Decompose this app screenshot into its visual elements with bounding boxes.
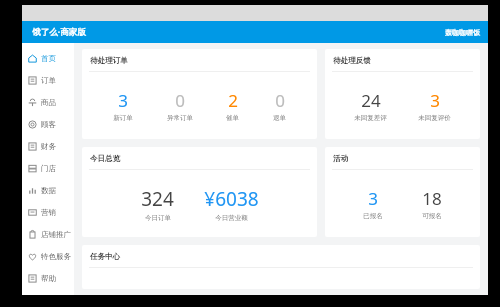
- staticText: 饿了么·商家版: [32, 26, 86, 38]
- staticText: 24: [361, 89, 381, 112]
- staticText: 2: [228, 89, 238, 112]
- staticText: 3: [368, 187, 378, 210]
- staticText: 门店: [41, 164, 56, 173]
- button[interactable]: 轰咖咖喱饭: [437, 25, 488, 40]
- button[interactable]: 顾客: [22, 113, 74, 135]
- button[interactable]: 数据: [22, 179, 74, 201]
- staticText: 店铺推广: [41, 230, 71, 239]
- staticText: 特色服务: [41, 252, 71, 261]
- staticText: 新订单: [113, 114, 133, 122]
- button[interactable]: 3: [361, 187, 385, 220]
- button[interactable]: 3: [416, 89, 453, 122]
- button[interactable]: 特色服务: [22, 245, 74, 267]
- button[interactable]: 24: [352, 89, 389, 122]
- staticText: 未回复差评: [354, 114, 387, 122]
- button[interactable]: 商品: [22, 91, 74, 113]
- staticText: 首页: [41, 54, 56, 63]
- staticText: 待处理订单: [90, 56, 128, 65]
- staticText: 18: [422, 187, 442, 210]
- button[interactable]: 订单: [22, 69, 74, 91]
- button[interactable]: 待处理反馈: [325, 49, 480, 139]
- staticText: 催单: [226, 114, 239, 122]
- staticText: 轰咖咖喱饭: [445, 28, 480, 37]
- staticText: 0: [175, 89, 185, 112]
- staticText: ¥6038: [204, 186, 259, 212]
- staticText: 324: [141, 186, 174, 212]
- button[interactable]: 首页: [22, 47, 74, 69]
- staticText: 异常订单: [167, 114, 193, 122]
- button[interactable]: 营销: [22, 201, 74, 223]
- button[interactable]: 18: [420, 187, 444, 220]
- button[interactable]: 3: [111, 89, 135, 122]
- staticText: 今日营业额: [215, 214, 248, 222]
- staticText: 营销: [41, 208, 56, 217]
- staticText: 今日总览: [90, 154, 120, 163]
- staticText: 数据: [41, 186, 56, 195]
- staticText: 顾客: [41, 120, 56, 129]
- staticText: 订单: [41, 76, 56, 85]
- button[interactable]: 今日总览: [82, 147, 317, 237]
- staticText: 帮助: [41, 274, 56, 283]
- staticText: 已报名: [363, 212, 383, 220]
- staticText: 退单: [273, 114, 286, 122]
- staticText: 今日订单: [145, 214, 171, 222]
- staticText: 待处理反馈: [333, 56, 371, 65]
- button[interactable]: 待处理订单: [82, 49, 317, 139]
- staticText: 商品: [41, 98, 56, 107]
- button[interactable]: 财务: [22, 135, 74, 157]
- button[interactable]: 324: [139, 186, 176, 222]
- staticText: 3: [118, 89, 128, 112]
- button[interactable]: 门店: [22, 157, 74, 179]
- button[interactable]: 2: [224, 89, 241, 122]
- staticText: 财务: [41, 142, 56, 151]
- button[interactable]: 0: [271, 89, 288, 122]
- staticText: 未回复评价: [418, 114, 451, 122]
- button[interactable]: 任务中心: [82, 245, 480, 289]
- staticText: 可报名: [422, 212, 442, 220]
- staticText: 任务中心: [90, 252, 120, 261]
- button[interactable]: 活动: [325, 147, 480, 237]
- staticText: 3: [430, 89, 440, 112]
- button[interactable]: 帮助: [22, 267, 74, 289]
- button[interactable]: 0: [165, 89, 195, 122]
- staticText: 0: [275, 89, 285, 112]
- button[interactable]: ¥6038: [202, 186, 261, 222]
- button[interactable]: 店铺推广: [22, 223, 74, 245]
- staticText: 活动: [333, 154, 348, 163]
